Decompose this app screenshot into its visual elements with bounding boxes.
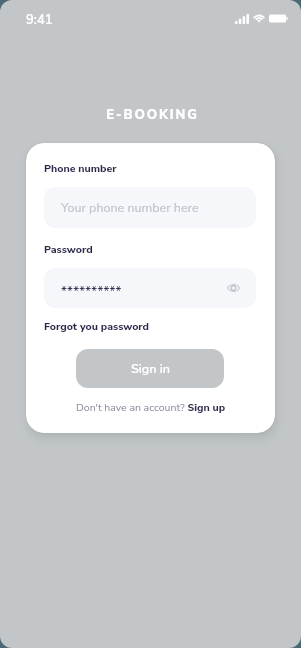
- staticText: Forgot you password: [44, 319, 149, 333]
- staticText: Phone number: [44, 161, 117, 175]
- button[interactable]: Your phone number here: [44, 187, 256, 228]
- staticText: Password: [44, 242, 93, 256]
- button[interactable]: Sign in: [76, 349, 224, 388]
- staticText: Your phone number here: [61, 199, 199, 216]
- staticText: 9:41: [26, 11, 53, 29]
- staticText: **********: [61, 283, 122, 301]
- button[interactable]: Show password: [223, 278, 243, 298]
- button[interactable]: **********: [44, 268, 256, 308]
- staticText: Sign in: [131, 360, 170, 377]
- button[interactable]: Don't have an account? Sign up: [76, 400, 226, 414]
- staticText: E-BOOKING: [2, 106, 301, 124]
